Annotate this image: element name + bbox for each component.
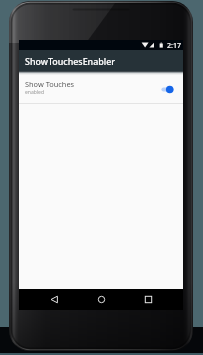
button[interactable]: Show Touches	[19, 75, 183, 103]
button[interactable]: ShowTouchesEnabler	[19, 50, 183, 71]
button[interactable]: Home	[93, 291, 110, 308]
button[interactable]: Back	[46, 291, 63, 308]
button[interactable]: Show touches toggle	[160, 83, 174, 95]
staticText: enabled	[25, 89, 44, 96]
staticText: Show Touches	[25, 79, 75, 89]
staticText: ShowTouchesEnabler	[25, 55, 116, 67]
button[interactable]: Recent apps	[140, 291, 157, 308]
staticText: 2:17	[167, 41, 181, 51]
